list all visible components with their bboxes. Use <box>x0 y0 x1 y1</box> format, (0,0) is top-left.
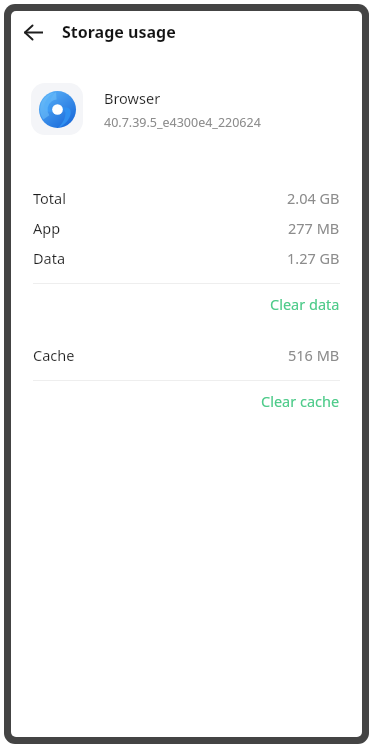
staticText: 1.27 GB <box>287 248 340 268</box>
button[interactable]: Back <box>16 15 50 49</box>
staticText: Cache <box>33 345 75 365</box>
staticText: Clear cache <box>261 391 340 411</box>
staticText: 2.04 GB <box>287 188 340 208</box>
button[interactable]: Clear data <box>11 284 362 324</box>
button[interactable]: App <box>11 213 362 243</box>
button[interactable]: Browser <box>11 83 362 135</box>
button[interactable]: Cache <box>11 340 362 370</box>
staticText: App <box>33 218 61 238</box>
staticText: 40.7.39.5_e4300e4_220624 <box>104 114 261 131</box>
staticText: Clear data <box>270 294 340 314</box>
staticText: Browser <box>104 88 161 108</box>
button[interactable]: Data <box>11 243 362 273</box>
button[interactable]: Total <box>11 183 362 213</box>
button[interactable]: Clear cache <box>11 381 362 421</box>
staticText: Total <box>33 188 66 208</box>
staticText: Storage usage <box>62 21 176 43</box>
staticText: 277 MB <box>288 218 340 238</box>
staticText: 516 MB <box>288 345 340 365</box>
staticText: Data <box>33 248 66 268</box>
